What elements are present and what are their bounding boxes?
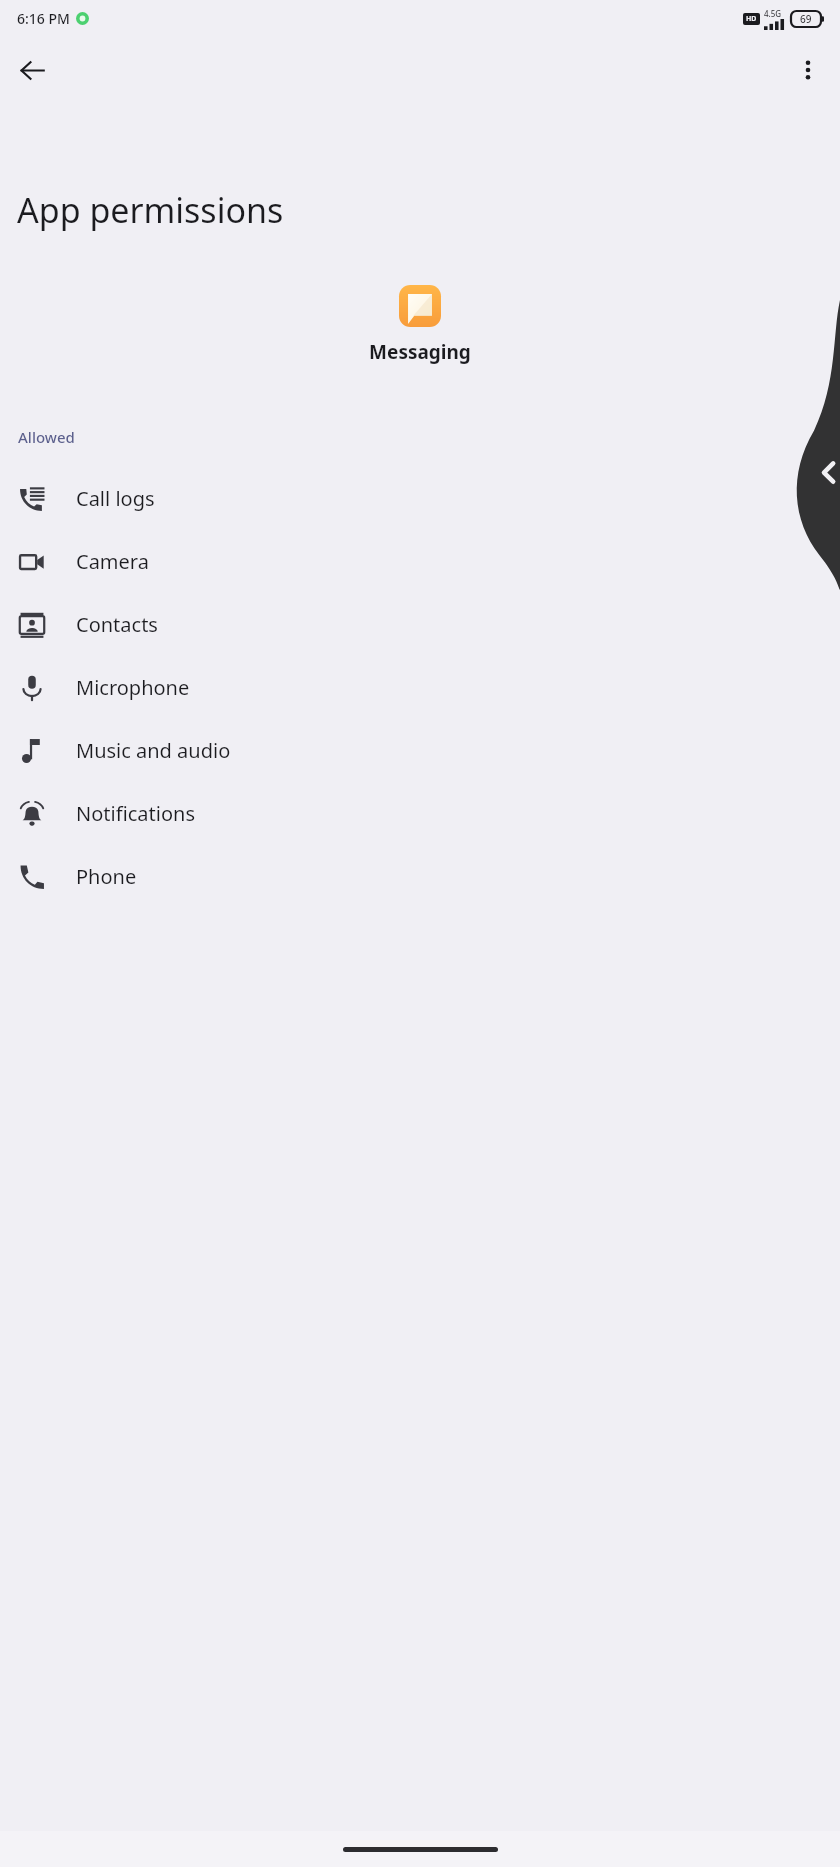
staticText: Phone	[76, 863, 137, 890]
staticText: Messaging	[369, 339, 471, 365]
button[interactable]: Camera	[0, 530, 840, 593]
staticText: Microphone	[76, 674, 190, 701]
button[interactable]: Contacts	[0, 593, 840, 656]
staticText: App permissions	[17, 187, 284, 233]
staticText: 4.5G	[764, 8, 782, 19]
staticText: 69	[800, 12, 812, 26]
button[interactable]: Back	[6, 44, 58, 96]
button[interactable]: Notifications	[0, 782, 840, 845]
staticText: Call logs	[76, 485, 155, 512]
staticText: 6:16 PM	[17, 9, 70, 28]
button[interactable]: More options	[784, 46, 832, 94]
staticText: Allowed	[18, 427, 75, 447]
staticText: Contacts	[76, 611, 158, 638]
staticText: Camera	[76, 548, 149, 575]
staticText: Notifications	[76, 800, 195, 827]
button[interactable]: Microphone	[0, 656, 840, 719]
staticText: HD	[746, 14, 757, 24]
button[interactable]: Back gesture	[786, 300, 840, 590]
staticText: Music and audio	[76, 737, 231, 764]
button[interactable]: Call logs	[0, 467, 840, 530]
button[interactable]: Phone	[0, 845, 840, 908]
button[interactable]: Music and audio	[0, 719, 840, 782]
